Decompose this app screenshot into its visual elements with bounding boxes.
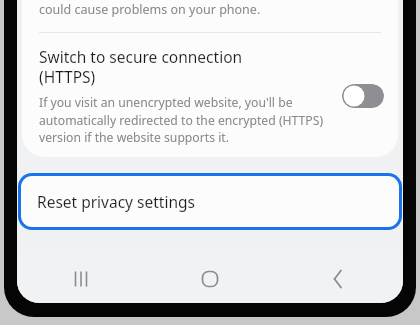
- button[interactable]: Home: [145, 255, 274, 303]
- staticText: Reset privacy settings: [37, 191, 195, 212]
- button[interactable]: Switch to secure connection toggle: [342, 84, 384, 108]
- staticText: Switch to secure connection (HTTPS): [39, 46, 243, 88]
- staticText: could cause problems on your phone.: [39, 1, 261, 18]
- button[interactable]: Back: [274, 255, 403, 303]
- button[interactable]: Reset privacy settings: [18, 173, 402, 230]
- staticText: If you visit an unencrypted website, you…: [39, 94, 332, 145]
- button[interactable]: Switch to secure connection (HTTPS): [22, 33, 398, 145]
- button[interactable]: Recents: [17, 255, 145, 303]
